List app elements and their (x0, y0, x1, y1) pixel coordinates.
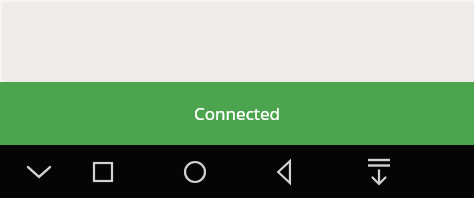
button[interactable]: Home (173, 150, 217, 194)
button[interactable]: Back (263, 150, 307, 194)
button[interactable]: Hide keyboard (17, 150, 61, 194)
staticText: Connected (194, 102, 280, 125)
button[interactable]: Connected (0, 82, 474, 145)
button[interactable]: Collapse (357, 150, 401, 194)
button[interactable]: Recent apps (81, 150, 125, 194)
